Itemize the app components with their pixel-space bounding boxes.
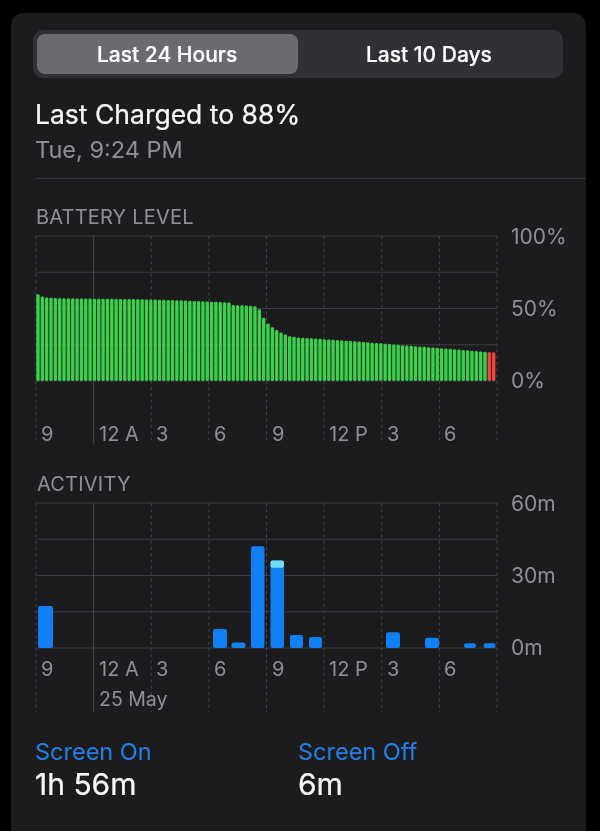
staticText: 9: [41, 422, 54, 446]
staticText: 9: [272, 422, 285, 446]
button[interactable]: Last 10 Days: [298, 34, 559, 74]
staticText: Tue, 9:24 PM: [35, 135, 183, 163]
button[interactable]: Last 24 Hours: [37, 34, 298, 74]
button[interactable]: Screen Off: [298, 737, 418, 765]
staticText: Last 10 Days: [366, 42, 492, 67]
staticText: 3: [156, 422, 169, 446]
staticText: 9: [272, 657, 285, 681]
staticText: Screen Off: [298, 737, 418, 765]
staticText: 6: [444, 422, 457, 446]
staticText: 60m: [511, 491, 556, 516]
staticText: 0%: [511, 368, 545, 393]
staticText: 30m: [511, 563, 556, 588]
staticText: 25 May: [99, 687, 168, 711]
staticText: 50%: [511, 296, 558, 321]
staticText: Screen On: [35, 737, 152, 765]
staticText: 12 A: [99, 422, 139, 446]
staticText: 100%: [511, 224, 567, 249]
staticText: 9: [41, 657, 54, 681]
staticText: 3: [156, 657, 169, 681]
staticText: 12 A: [99, 657, 139, 681]
button[interactable]: Screen On: [35, 737, 152, 765]
staticText: BATTERY LEVEL: [36, 205, 194, 229]
staticText: Last 24 Hours: [97, 42, 238, 67]
staticText: ACTIVITY: [37, 472, 131, 496]
staticText: 6: [444, 657, 457, 681]
staticText: 1h 56m: [35, 766, 137, 802]
staticText: 3: [387, 657, 400, 681]
staticText: 6: [214, 657, 227, 681]
staticText: 6: [214, 422, 227, 446]
staticText: 0m: [511, 635, 543, 660]
staticText: Last Charged to 88%: [35, 98, 301, 130]
staticText: 12 P: [329, 657, 368, 681]
staticText: 12 P: [329, 422, 368, 446]
staticText: 6m: [298, 766, 343, 802]
staticText: 3: [387, 422, 400, 446]
